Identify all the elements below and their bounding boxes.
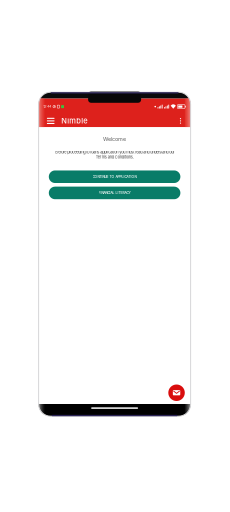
staticText: 12:44 [43, 105, 51, 109]
staticText: FINANCIAL LITERACY [99, 191, 131, 195]
staticText: Nimble [61, 116, 87, 125]
staticText: CONTINUE TO APPLICATION [93, 175, 137, 179]
button[interactable]: CONTINUE TO APPLICATION [49, 170, 180, 183]
staticText: Welcome [103, 136, 126, 142]
staticText: Before proceeding to loans application y… [55, 150, 174, 159]
button[interactable]: New message [168, 384, 185, 401]
button[interactable]: More options [174, 112, 187, 130]
button[interactable]: Menu [42, 112, 59, 130]
button[interactable]: FINANCIAL LITERACY [49, 187, 180, 199]
